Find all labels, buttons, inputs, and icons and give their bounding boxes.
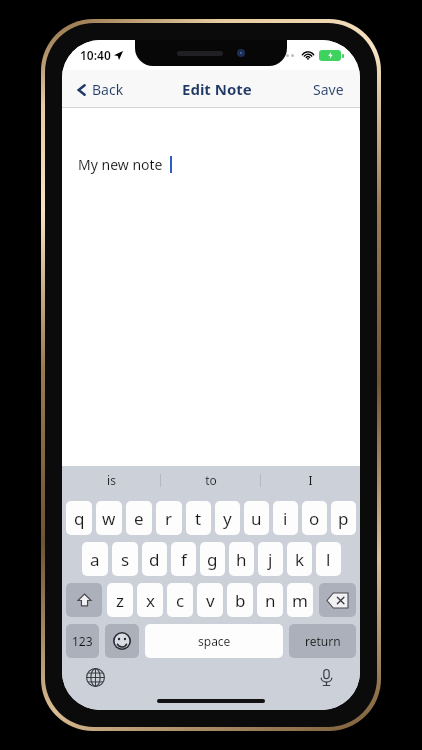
staticText: u	[251, 507, 262, 530]
button[interactable]: j	[258, 542, 283, 576]
staticText: g	[207, 548, 218, 571]
button[interactable]: v	[197, 583, 223, 617]
staticText: v	[206, 589, 215, 612]
button[interactable]: is	[62, 466, 160, 494]
button[interactable]: e	[126, 501, 152, 535]
button[interactable]: w	[96, 501, 122, 535]
staticText: k	[295, 548, 305, 571]
button[interactable]: t	[186, 501, 211, 535]
staticText: t	[195, 507, 202, 530]
button[interactable]: u	[244, 501, 269, 535]
staticText: Back	[92, 80, 124, 99]
staticText: l	[326, 548, 331, 571]
button[interactable]: f	[171, 542, 196, 576]
staticText: w	[102, 507, 116, 530]
staticText: s	[121, 548, 130, 571]
button[interactable]: k	[287, 542, 312, 576]
staticText: c	[176, 589, 185, 612]
button[interactable]: g	[200, 542, 225, 576]
staticText: My new note	[78, 155, 163, 174]
staticText: a	[90, 548, 100, 571]
button[interactable]: Back	[72, 74, 128, 105]
button[interactable]: l	[316, 542, 341, 576]
staticText: e	[134, 507, 144, 530]
staticText: to	[205, 472, 217, 488]
staticText: b	[235, 589, 246, 612]
button[interactable]: p	[331, 501, 356, 535]
staticText: z	[116, 589, 124, 612]
button[interactable]: Change keyboard	[82, 664, 109, 691]
button[interactable]: z	[107, 583, 133, 617]
button[interactable]: b	[227, 583, 253, 617]
staticText: 10:40	[80, 47, 111, 63]
button[interactable]: Emoji	[105, 624, 139, 658]
button[interactable]: Backspace	[319, 583, 356, 617]
staticText: y	[223, 507, 232, 530]
staticText: o	[309, 507, 320, 530]
button[interactable]: to	[161, 466, 260, 494]
button[interactable]: c	[167, 583, 193, 617]
staticText: 123	[72, 633, 93, 649]
staticText: is	[107, 472, 116, 488]
button[interactable]: Dictate	[313, 664, 340, 691]
button[interactable]: Save	[307, 74, 350, 105]
button[interactable]: m	[287, 583, 313, 617]
staticText: j	[268, 548, 273, 571]
staticText: m	[292, 589, 308, 612]
button[interactable]: a	[82, 542, 108, 576]
staticText: i	[283, 507, 288, 530]
button[interactable]: space	[145, 624, 283, 658]
button[interactable]: I	[261, 466, 360, 494]
button[interactable]: o	[302, 501, 327, 535]
button[interactable]: return	[289, 624, 356, 658]
staticText: f	[181, 548, 187, 571]
button[interactable]: h	[229, 542, 254, 576]
staticText: r	[165, 507, 173, 530]
staticText: I	[308, 472, 313, 488]
staticText: space	[198, 633, 231, 649]
staticText: n	[265, 589, 276, 612]
staticText: Save	[313, 80, 344, 99]
button[interactable]: 123	[66, 624, 99, 658]
staticText: q	[74, 507, 85, 530]
button[interactable]: r	[156, 501, 182, 535]
button[interactable]: d	[142, 542, 167, 576]
button[interactable]: y	[215, 501, 240, 535]
staticText: return	[305, 633, 341, 649]
button[interactable]: n	[257, 583, 283, 617]
staticText: d	[149, 548, 160, 571]
button[interactable]: i	[273, 501, 298, 535]
button[interactable]: Shift	[66, 583, 102, 617]
button[interactable]: s	[112, 542, 138, 576]
staticText: Edit Note	[182, 79, 252, 99]
staticText: h	[236, 548, 247, 571]
button[interactable]: q	[66, 501, 92, 535]
staticText: x	[146, 589, 155, 612]
button[interactable]: x	[137, 583, 163, 617]
staticText: p	[338, 507, 349, 530]
